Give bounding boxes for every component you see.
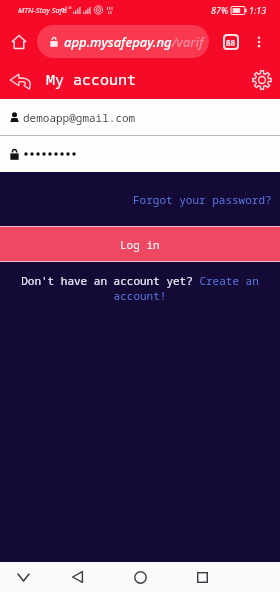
- button[interactable]: Recent apps: [188, 563, 216, 591]
- staticText: My account: [46, 69, 137, 89]
- button[interactable]: Open tabs: [220, 31, 242, 53]
- staticText: demoapp@gmail.com: [23, 110, 136, 125]
- staticText: Log in: [120, 237, 160, 252]
- staticText: 88: [226, 37, 236, 48]
- button[interactable]: More options: [248, 31, 270, 53]
- button[interactable]: demoapp@gmail.com: [0, 99, 280, 135]
- button[interactable]: [0, 136, 280, 172]
- button[interactable]: Forgot your password?: [125, 188, 280, 211]
- button[interactable]: Home: [126, 563, 154, 591]
- staticText: 87%: [211, 4, 229, 16]
- button[interactable]: Home: [6, 29, 32, 55]
- button[interactable]: app.mysafepay.ng/varif: [37, 25, 209, 58]
- button[interactable]: Settings: [247, 65, 277, 95]
- button[interactable]: Back: [6, 66, 36, 96]
- button[interactable]: Log in: [0, 226, 280, 262]
- button[interactable]: Back: [63, 563, 91, 591]
- staticText: app.mysafepay.ng/varif: [64, 33, 204, 51]
- button[interactable]: Don't have an account yet? Create an acc…: [20, 273, 260, 303]
- staticText: MTN-Stay Safe: [18, 5, 66, 15]
- button[interactable]: Hide keyboard: [9, 563, 37, 591]
- staticText: 1:13: [249, 4, 267, 16]
